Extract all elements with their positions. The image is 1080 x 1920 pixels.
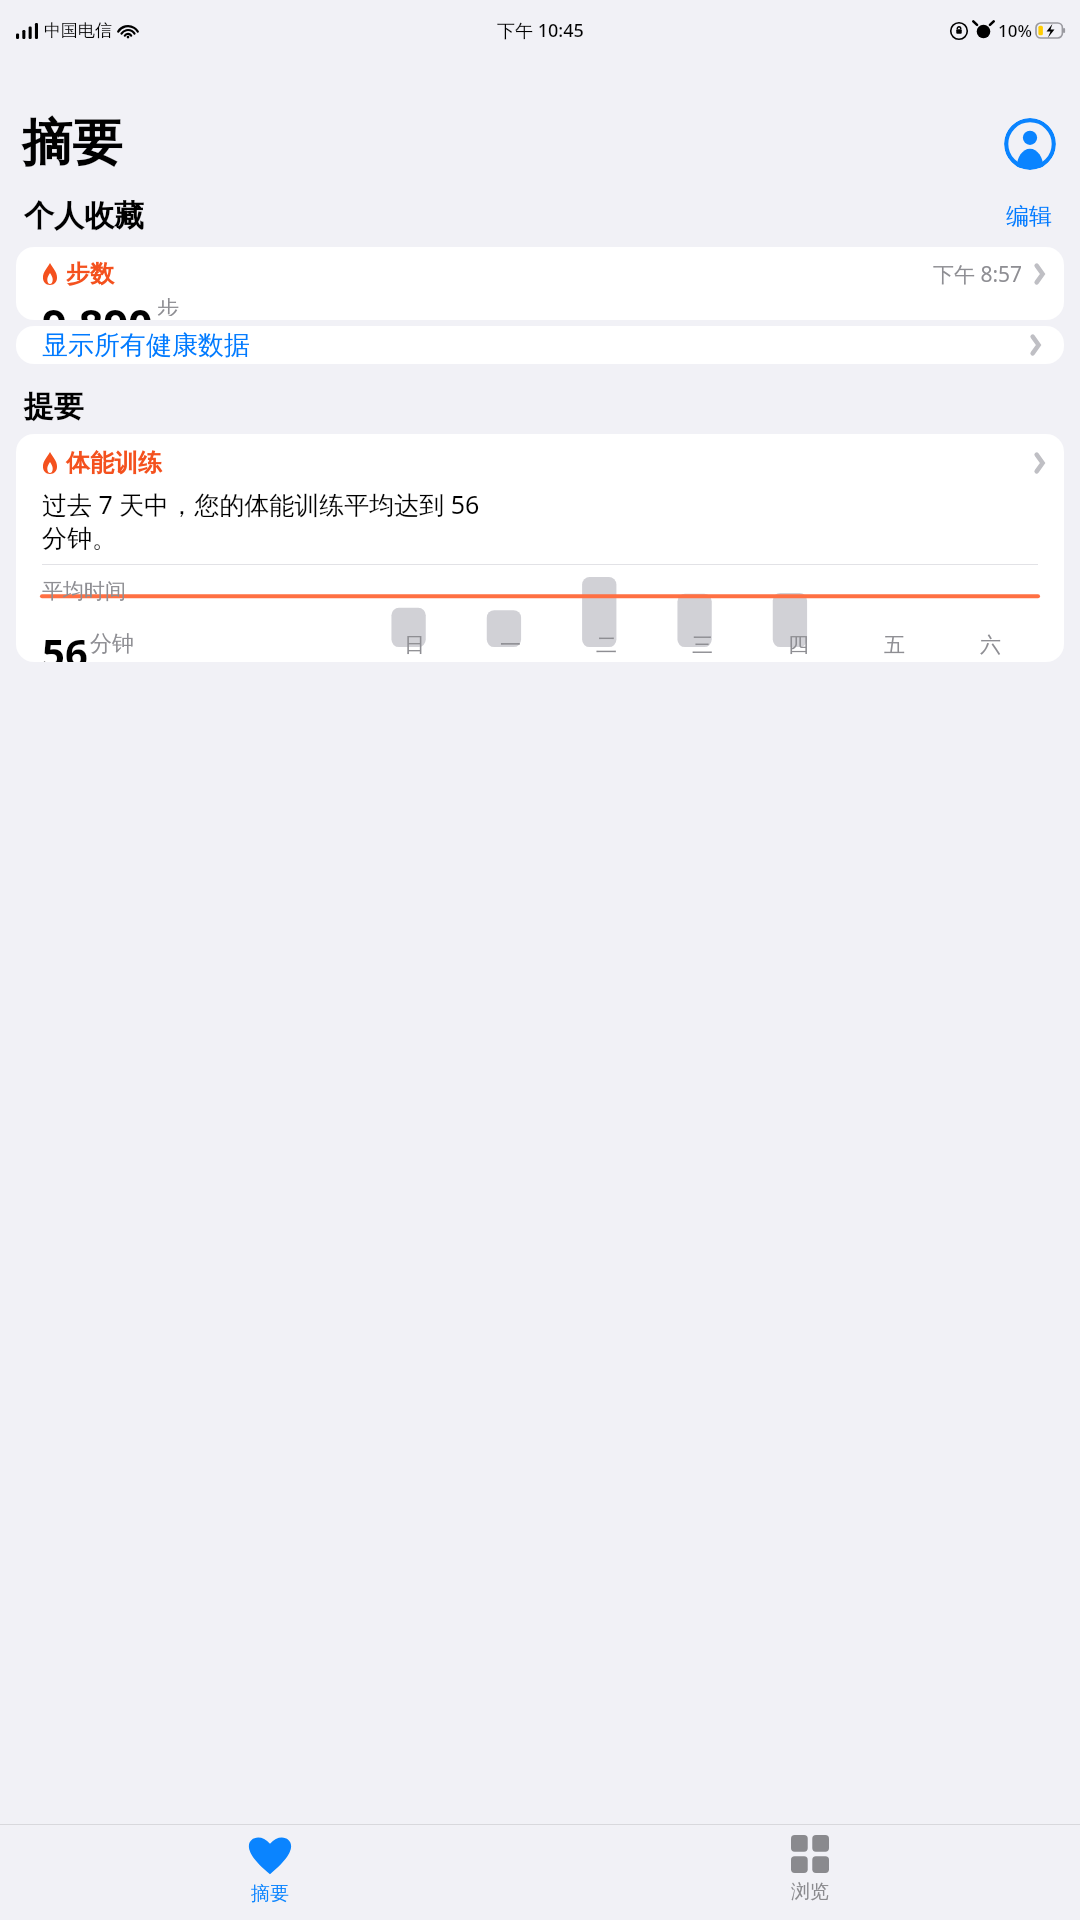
staticText: 体能训练 xyxy=(66,448,162,478)
staticText: 步 xyxy=(157,295,179,316)
staticText: 编辑 xyxy=(1006,202,1052,231)
button[interactable]: 步数 xyxy=(16,247,1064,320)
staticText: 日 xyxy=(404,632,425,658)
staticText: 分钟 xyxy=(90,630,134,658)
button[interactable]: 编辑 xyxy=(1002,198,1056,235)
staticText: 下午 8:57 xyxy=(933,260,1023,289)
staticText: 9,890 xyxy=(42,295,153,320)
staticText: 56 xyxy=(42,625,88,662)
button[interactable]: 浏览 xyxy=(540,1825,1080,1920)
button[interactable]: 体能训练 xyxy=(16,434,1064,662)
staticText: 个人收藏 xyxy=(24,197,144,235)
staticText: 过去 7 天中，您的体能训练平均达到 56 分钟。 xyxy=(42,487,480,554)
staticText: 四 xyxy=(788,632,809,658)
staticText: 摘要 xyxy=(251,1882,289,1906)
staticText: 步数 xyxy=(66,259,114,289)
staticText: 提要 xyxy=(24,388,84,426)
staticText: 中国电信 xyxy=(44,20,112,41)
staticText: 二 xyxy=(596,632,617,658)
button[interactable]: 摘要 xyxy=(0,1825,540,1920)
staticText: 三 xyxy=(692,632,713,658)
staticText: 五 xyxy=(884,632,905,658)
staticText: 摘要 xyxy=(22,112,122,175)
staticText: 下午 10:45 xyxy=(497,18,584,43)
staticText: 一 xyxy=(500,632,521,658)
staticText: 浏览 xyxy=(791,1880,829,1904)
button[interactable]: Profile xyxy=(1004,118,1056,170)
button[interactable]: 显示所有健康数据 xyxy=(16,326,1064,364)
staticText: 平均时间 xyxy=(42,578,126,604)
staticText: 10% xyxy=(998,19,1032,42)
staticText: 显示所有健康数据 xyxy=(42,329,250,362)
staticText: 六 xyxy=(980,632,1001,658)
